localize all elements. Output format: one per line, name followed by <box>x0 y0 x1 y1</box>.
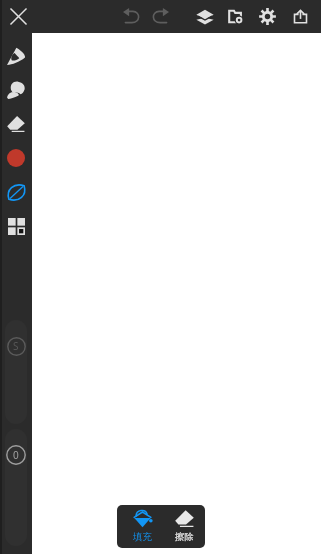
staticText: S <box>13 339 19 353</box>
button[interactable]: Brush <box>0 73 32 107</box>
button[interactable]: Layers <box>191 0 219 33</box>
button[interactable]: Eraser <box>0 107 32 141</box>
button[interactable]: 填充 <box>121 505 163 548</box>
staticText: 0 <box>13 448 19 462</box>
button[interactable]: Settings <box>253 0 281 33</box>
button[interactable]: Pen <box>0 39 32 73</box>
button[interactable]: 擦除 <box>163 505 205 548</box>
button[interactable]: Shape <box>0 175 32 209</box>
button[interactable]: Undo <box>117 0 145 33</box>
button[interactable]: Color <box>0 141 32 175</box>
staticText: 擦除 <box>175 531 194 543</box>
button[interactable]: Close <box>0 0 36 33</box>
staticText: 填充 <box>133 531 152 543</box>
button[interactable]: Brush size <box>4 333 28 359</box>
button[interactable]: Redo <box>146 0 174 33</box>
button[interactable]: Add image <box>221 0 249 33</box>
button[interactable]: Palette <box>0 209 32 243</box>
button[interactable]: Opacity <box>4 442 28 468</box>
button[interactable]: Share <box>286 0 314 33</box>
